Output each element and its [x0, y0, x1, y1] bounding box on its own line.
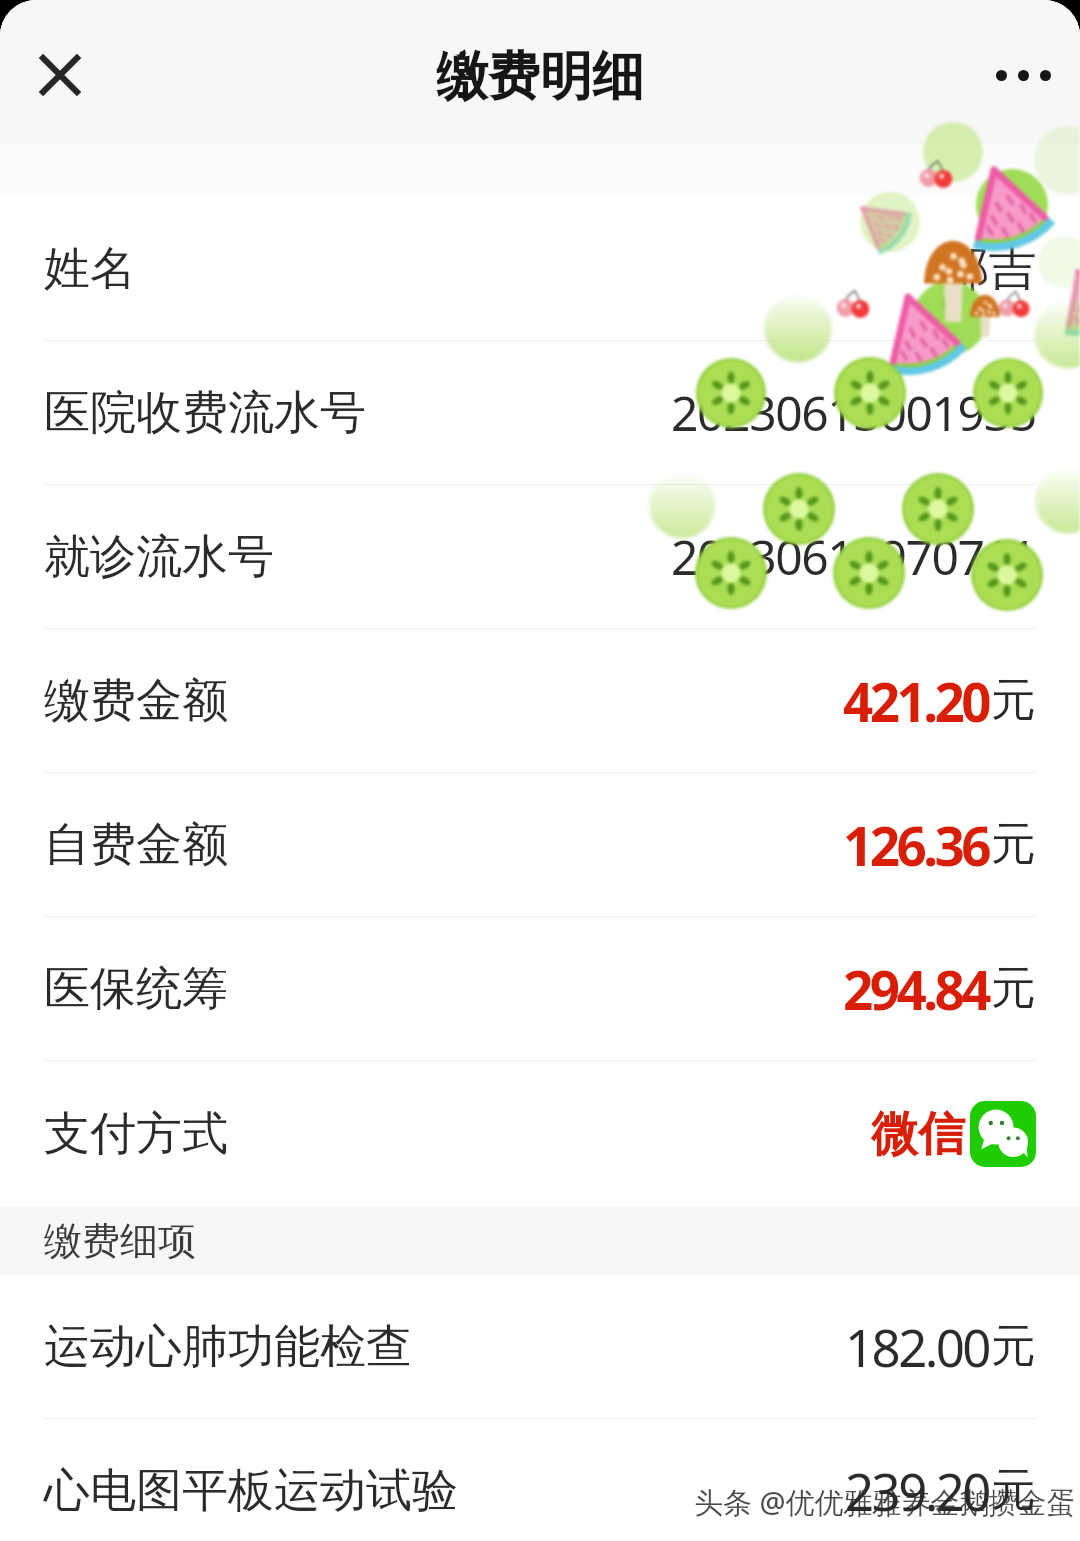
button[interactable]: More options	[983, 35, 1063, 115]
button[interactable]: 运动心肺功能检查	[0, 1275, 1080, 1418]
other: WeChat	[970, 1101, 1036, 1167]
staticText: 微信	[871, 1105, 965, 1164]
button[interactable]: 缴费金额	[0, 629, 1080, 772]
staticText: 元	[991, 672, 1036, 729]
staticText: 心电图平板运动试验	[44, 1462, 458, 1520]
staticText: 医保统筹	[44, 960, 228, 1018]
staticText: 元	[991, 1318, 1036, 1375]
button[interactable]: 心电图平板运动试验	[0, 1419, 1080, 1541]
button[interactable]: 支付方式	[0, 1061, 1080, 1207]
staticText: 20230613970711	[671, 524, 1036, 589]
staticText: 421.20	[843, 665, 988, 737]
button[interactable]: 医保统筹	[0, 917, 1080, 1060]
staticText: 郑吉	[942, 239, 1036, 299]
staticText: 姓名	[44, 240, 136, 298]
button[interactable]: 就诊流水号	[0, 485, 1080, 628]
staticText: 182.00	[845, 1312, 989, 1381]
staticText: 缴费金额	[44, 672, 228, 730]
staticText: 自费金额	[44, 816, 228, 874]
staticText: 元	[991, 816, 1036, 873]
staticText: 缴费明细	[436, 44, 644, 110]
staticText: 缴费细项	[44, 1217, 196, 1265]
staticText: 294.84	[843, 953, 988, 1025]
staticText: 20230613001935	[671, 380, 1036, 445]
staticText: 就诊流水号	[44, 528, 274, 586]
button[interactable]: 医院收费流水号	[0, 341, 1080, 484]
button[interactable]: 自费金额	[0, 773, 1080, 916]
staticText: 239.20	[845, 1456, 989, 1525]
button[interactable]: Close	[18, 33, 102, 117]
staticText: 元	[991, 1462, 1036, 1519]
staticText: 头条 @优优雅雅养金鹅攒金蛋	[694, 1482, 1076, 1522]
staticText: 126.36	[843, 809, 988, 881]
staticText: 元	[991, 960, 1036, 1017]
staticText: 运动心肺功能检查	[44, 1318, 412, 1376]
staticText: 医院收费流水号	[44, 384, 366, 442]
button[interactable]: 姓名	[0, 197, 1080, 340]
staticText: 支付方式	[44, 1105, 228, 1163]
